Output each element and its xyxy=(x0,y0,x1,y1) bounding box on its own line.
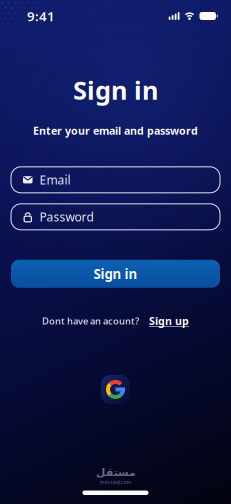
button[interactable] xyxy=(101,375,130,404)
staticText: Sign up xyxy=(149,314,189,328)
staticText: Dont have an acount? xyxy=(42,315,139,327)
button[interactable]: Sign up xyxy=(149,314,189,328)
button[interactable]: Sign in xyxy=(11,260,220,288)
staticText: مستقل xyxy=(95,466,135,478)
button[interactable]: Email xyxy=(11,167,220,193)
staticText: 9:41 xyxy=(27,7,55,25)
staticText: mostaql.com xyxy=(99,478,131,485)
button[interactable]: Password xyxy=(11,204,220,230)
staticText: Sign in xyxy=(73,73,158,107)
staticText: Enter your email and password xyxy=(33,124,198,138)
staticText: Email xyxy=(39,172,70,188)
staticText: Password xyxy=(39,209,93,225)
staticText: Sign in xyxy=(93,265,137,283)
